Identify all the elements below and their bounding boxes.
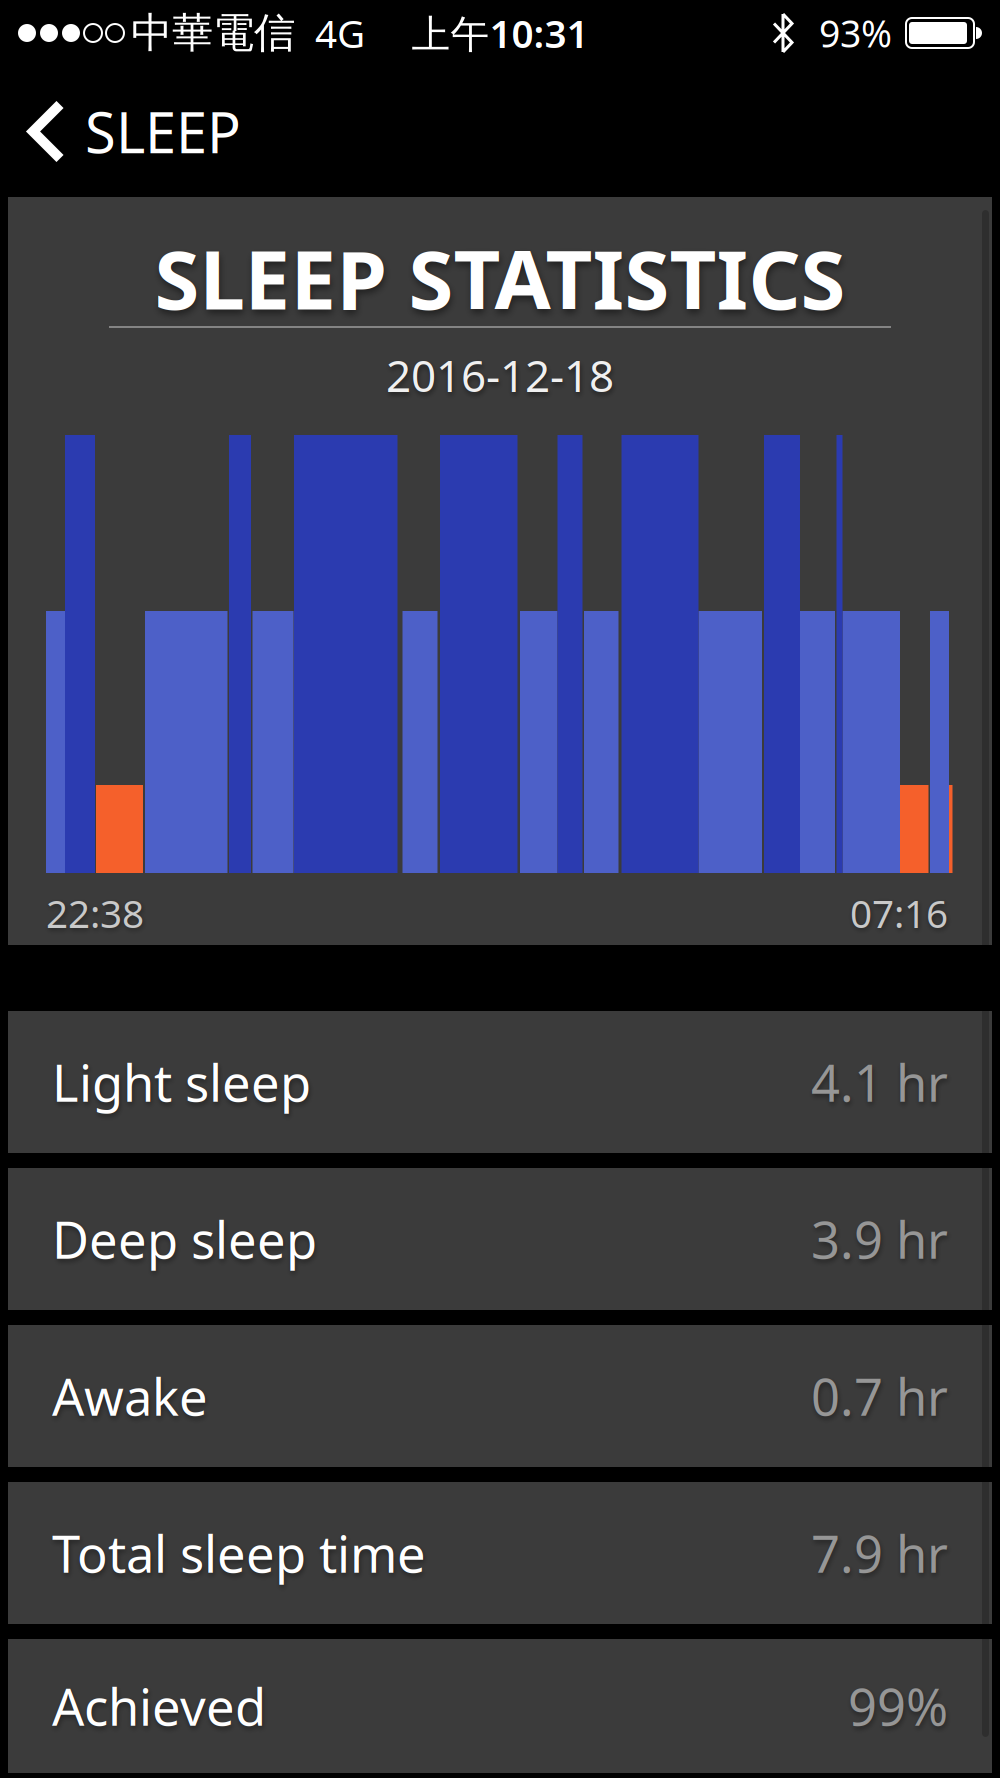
staticText: 99%: [848, 1672, 948, 1740]
button[interactable]: Achieved: [8, 1639, 992, 1773]
staticText: Achieved: [52, 1672, 266, 1740]
staticText: Deep sleep: [52, 1205, 317, 1273]
staticText: 93%: [819, 8, 892, 58]
staticText: 0.7 hr: [811, 1362, 948, 1430]
staticText: Light sleep: [52, 1048, 311, 1116]
staticText: 上午10:31: [411, 7, 588, 59]
button[interactable]: SLEEP: [0, 94, 241, 169]
button[interactable]: Awake: [8, 1325, 992, 1467]
button[interactable]: Total sleep time: [8, 1482, 992, 1624]
staticText: 07:16: [850, 887, 948, 939]
staticText: Awake: [52, 1362, 208, 1430]
staticText: 3.9 hr: [811, 1205, 948, 1273]
staticText: 2016-12-18: [386, 346, 614, 404]
staticText: 4.1 hr: [811, 1048, 948, 1116]
staticText: SLEEP: [85, 94, 241, 169]
button[interactable]: Light sleep: [8, 1011, 992, 1153]
staticText: 7.9 hr: [811, 1519, 948, 1587]
staticText: Total sleep time: [52, 1519, 426, 1587]
staticText: SLEEP STATISTICS: [154, 224, 845, 332]
button[interactable]: Deep sleep: [8, 1168, 992, 1310]
staticText: 4G: [315, 7, 365, 59]
staticText: 22:38: [46, 887, 144, 939]
staticText: 中華電信: [131, 8, 295, 58]
